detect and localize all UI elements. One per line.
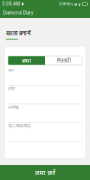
staticText: राशि <box>8 86 15 92</box>
staticText: नोट (वैकल्पिक) <box>8 123 31 129</box>
staticText: नाम <box>8 67 14 73</box>
staticText: खाता बनायें <box>6 29 31 37</box>
staticText: 3.0KB/s <box>59 2 73 6</box>
staticText: जमा <box>21 57 31 64</box>
staticText: तारीख <box>8 104 19 110</box>
button[interactable]: जमा करें <box>0 165 90 180</box>
button[interactable]: जमा <box>8 56 45 65</box>
staticText: Diamond Diary <box>3 10 33 16</box>
staticText: निकासी <box>56 57 70 64</box>
staticText: 5:08 AM <box>2 1 20 7</box>
button[interactable]: निकासी <box>45 56 82 65</box>
staticText: जमा करें <box>34 168 55 177</box>
